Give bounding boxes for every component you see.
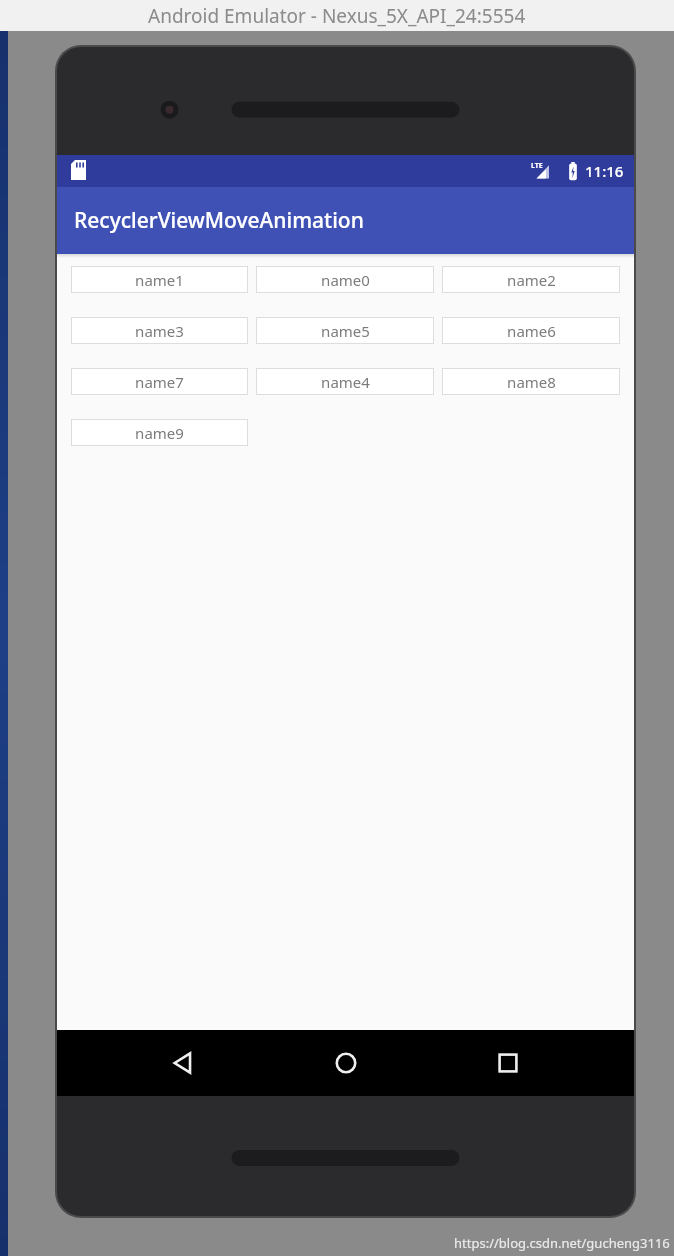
- button[interactable]: name3: [71, 317, 248, 344]
- staticText: name5: [321, 321, 370, 341]
- button[interactable]: name9: [71, 419, 248, 446]
- staticText: name2: [507, 270, 556, 290]
- staticText: name4: [321, 372, 370, 392]
- staticText: name8: [507, 372, 556, 392]
- button[interactable]: name1: [71, 266, 248, 293]
- staticText: https://blog.csdn.net/gucheng3116: [454, 1234, 670, 1252]
- staticText: 11:16: [585, 161, 624, 181]
- staticText: Android Emulator - Nexus_5X_API_24:5554: [148, 3, 526, 29]
- staticText: name1: [135, 270, 184, 290]
- staticText: LTE: [531, 161, 543, 171]
- button[interactable]: name5: [256, 317, 434, 344]
- button[interactable]: name2: [442, 266, 620, 293]
- button[interactable]: name8: [442, 368, 620, 395]
- staticText: RecyclerViewMoveAnimation: [74, 206, 364, 235]
- staticText: name9: [135, 423, 184, 443]
- button[interactable]: name4: [256, 368, 434, 395]
- button[interactable]: Back: [147, 1030, 219, 1096]
- staticText: name3: [135, 321, 184, 341]
- staticText: name6: [507, 321, 556, 341]
- button[interactable]: Recent apps: [472, 1030, 544, 1096]
- button[interactable]: name6: [442, 317, 620, 344]
- button[interactable]: name0: [256, 266, 434, 293]
- button[interactable]: Home: [310, 1030, 382, 1096]
- button[interactable]: name7: [71, 368, 248, 395]
- staticText: name0: [321, 270, 370, 290]
- staticText: name7: [135, 372, 184, 392]
